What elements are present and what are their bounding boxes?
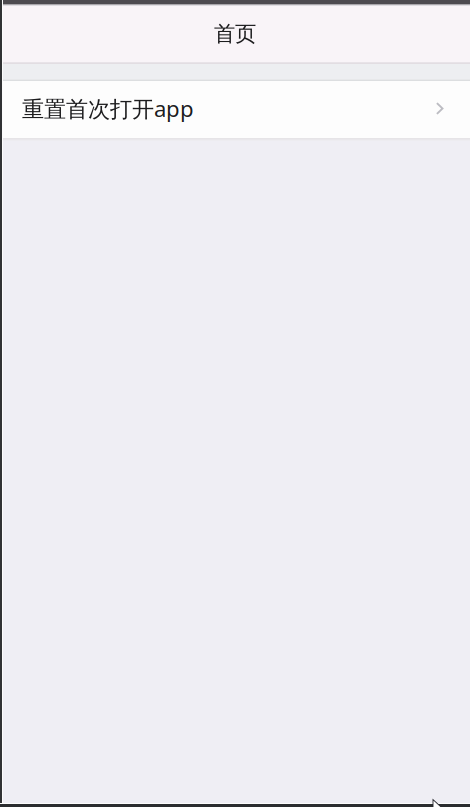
staticText: 首页 <box>214 21 256 47</box>
staticText: 重置首次打开app <box>22 94 194 123</box>
button[interactable]: 重置首次打开app <box>0 81 470 138</box>
